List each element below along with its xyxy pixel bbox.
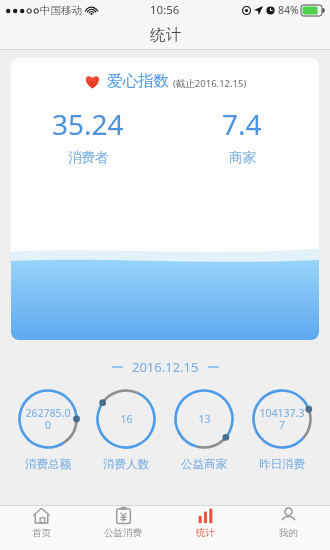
staticText: 公益商家: [181, 457, 227, 471]
button[interactable]: 13: [167, 388, 241, 471]
staticText: 13: [198, 412, 211, 426]
staticText: 消费人数: [103, 457, 149, 471]
staticText: 35.24: [52, 105, 124, 143]
staticText: 262785.00: [25, 406, 71, 432]
staticText: 84%: [278, 3, 299, 17]
button[interactable]: 262785.00: [11, 388, 85, 471]
staticText: 中国移动: [40, 4, 82, 17]
staticText: 2016.12.15: [132, 358, 199, 376]
staticText: 统计: [150, 25, 181, 45]
staticText: 16: [120, 412, 133, 426]
staticText: 7.4: [222, 105, 262, 143]
staticText: 消费者: [68, 149, 109, 166]
staticText: 104137.37: [259, 406, 305, 432]
staticText: 公益消费: [104, 527, 142, 539]
button[interactable]: 爱心指数: [11, 58, 319, 340]
staticText: (截止2016.12.15): [173, 77, 247, 90]
staticText: 爱心指数: [107, 71, 169, 91]
staticText: 统计: [196, 527, 215, 539]
staticText: 10:56: [150, 2, 180, 18]
staticText: 我的: [279, 527, 298, 539]
button[interactable]: 公益消费: [82, 506, 164, 539]
button[interactable]: 104137.37: [245, 388, 319, 471]
button[interactable]: 首页: [0, 506, 82, 539]
staticText: 昨日消费: [259, 457, 305, 471]
button[interactable]: 统计: [164, 506, 247, 539]
staticText: 商家: [229, 149, 256, 166]
staticText: 消费总额: [25, 457, 71, 471]
button[interactable]: 我的: [247, 506, 330, 539]
button[interactable]: 16: [89, 388, 163, 471]
staticText: 首页: [32, 527, 51, 539]
